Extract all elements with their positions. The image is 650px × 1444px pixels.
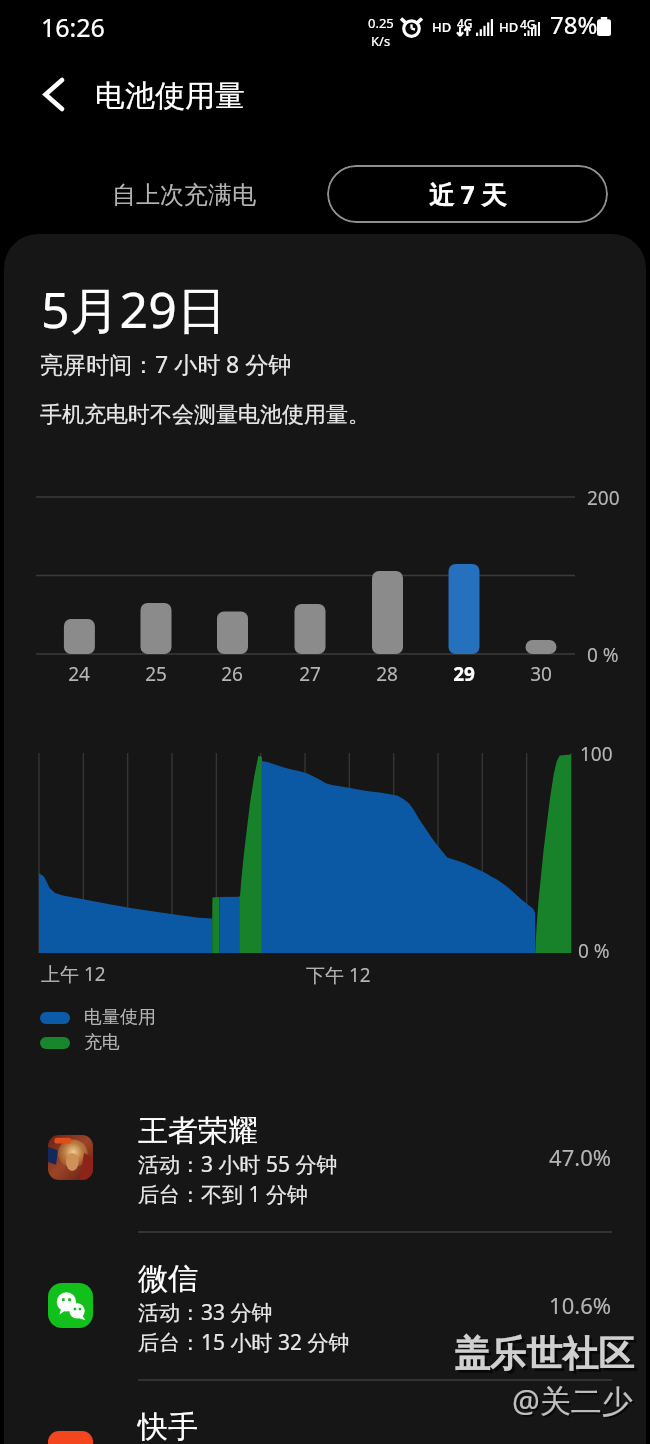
staticText: 30	[516, 661, 566, 687]
staticText: 快手	[138, 1408, 198, 1444]
staticText: HD	[499, 18, 519, 36]
staticText: 后台：15 小时 32 分钟	[138, 1328, 350, 1357]
staticText: 47.0%	[450, 1142, 611, 1172]
staticText: 亮屏时间：7 小时 8 分钟	[40, 348, 292, 379]
staticText: 自上次充满电	[112, 180, 256, 210]
button[interactable]: Back	[30, 71, 76, 117]
button[interactable]: 自上次充满电	[40, 158, 327, 232]
staticText: 电池使用量	[95, 77, 245, 115]
staticText: 电量使用	[84, 1006, 156, 1029]
staticText: 王者荣耀	[138, 1112, 258, 1150]
button[interactable]: 快手	[4, 1404, 642, 1444]
staticText: @关二少	[514, 1381, 635, 1423]
staticText: 充电	[84, 1031, 120, 1054]
staticText: 24	[54, 661, 104, 687]
staticText: @关二少	[512, 1379, 633, 1421]
staticText: 29	[439, 661, 489, 687]
staticText: 5月29日	[41, 275, 227, 343]
staticText: 100	[580, 741, 613, 767]
staticText: 微信	[138, 1260, 198, 1298]
staticText: 27	[285, 661, 335, 687]
button[interactable]: 微信	[4, 1256, 642, 1404]
staticText: 盖乐世社区	[457, 1334, 637, 1379]
staticText: 后台：不到 1 分钟	[138, 1180, 308, 1209]
staticText: 手机充电时不会测量电池使用量。	[40, 401, 370, 429]
staticText: K/s	[371, 32, 391, 50]
button[interactable]: 王者荣耀	[4, 1108, 642, 1256]
staticText: 0 %	[578, 938, 610, 964]
staticText: 活动：33 分钟	[138, 1298, 273, 1327]
staticText: 近 7 天	[429, 177, 507, 211]
staticText: 0.25	[368, 14, 394, 32]
staticText: 28	[362, 661, 412, 687]
staticText: 10.6%	[450, 1290, 611, 1320]
staticText: 200	[587, 485, 620, 511]
staticText: HD	[432, 18, 452, 36]
staticText: 4G	[457, 15, 473, 31]
staticText: 上午 12	[41, 961, 106, 987]
staticText: 25	[131, 661, 181, 687]
staticText: 下午 12	[306, 962, 371, 988]
staticText: 26	[207, 661, 257, 687]
staticText: 4G	[520, 16, 536, 32]
staticText: 78%	[550, 8, 598, 41]
staticText: 16:26	[41, 10, 105, 44]
staticText: 盖乐世社区	[454, 1331, 634, 1376]
staticText: 活动：3 小时 55 分钟	[138, 1150, 338, 1179]
staticText: 0 %	[587, 642, 619, 668]
button[interactable]: 近 7 天	[327, 165, 608, 223]
